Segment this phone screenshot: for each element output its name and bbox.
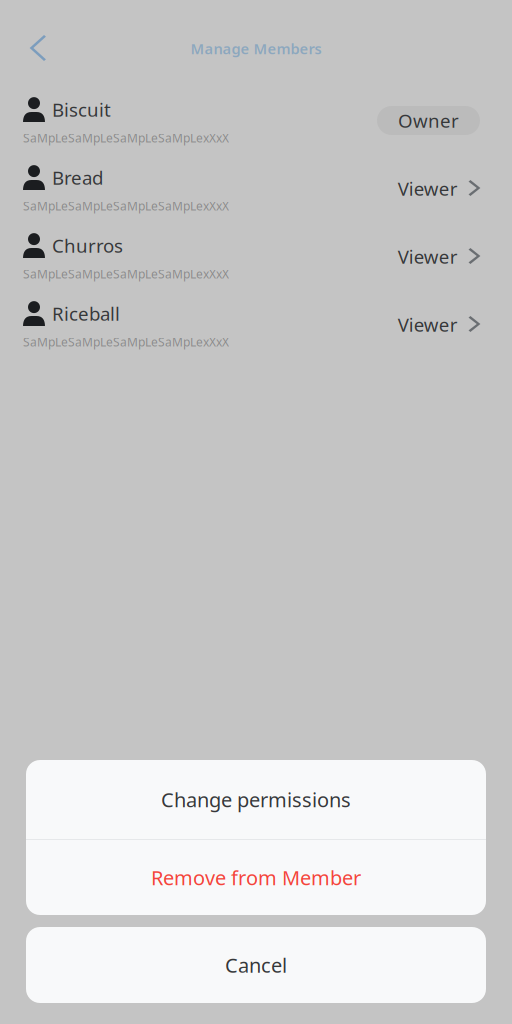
button[interactable]: Cancel [26,927,486,1003]
staticText: Cancel [225,952,287,978]
staticText: Change permissions [161,786,351,813]
button[interactable]: Change permissions [26,760,486,839]
button[interactable]: Back [0,25,63,71]
staticText: SaMpLeSaMpLeSaMpLeSaMpLexXxX [23,334,229,350]
staticText: Viewer [398,312,458,337]
staticText: Bread [52,165,103,190]
staticText: Biscuit [52,97,111,122]
staticText: SaMpLeSaMpLeSaMpLeSaMpLexXxX [23,266,229,282]
staticText: Riceball [52,301,120,326]
staticText: SaMpLeSaMpLeSaMpLeSaMpLexXxX [23,198,229,214]
button[interactable]: Riceball [0,301,512,369]
button[interactable]: Remove from Member [26,840,486,915]
button[interactable]: Bread [0,165,512,233]
staticText: Remove from Member [151,864,361,891]
staticText: SaMpLeSaMpLeSaMpLeSaMpLexXxX [23,130,229,146]
staticText: Viewer [398,176,458,201]
button[interactable]: Churros [0,233,512,301]
staticText: Owner [398,108,459,133]
staticText: Viewer [398,244,458,269]
staticText: Churros [52,233,123,258]
staticText: Manage Members [190,39,321,58]
